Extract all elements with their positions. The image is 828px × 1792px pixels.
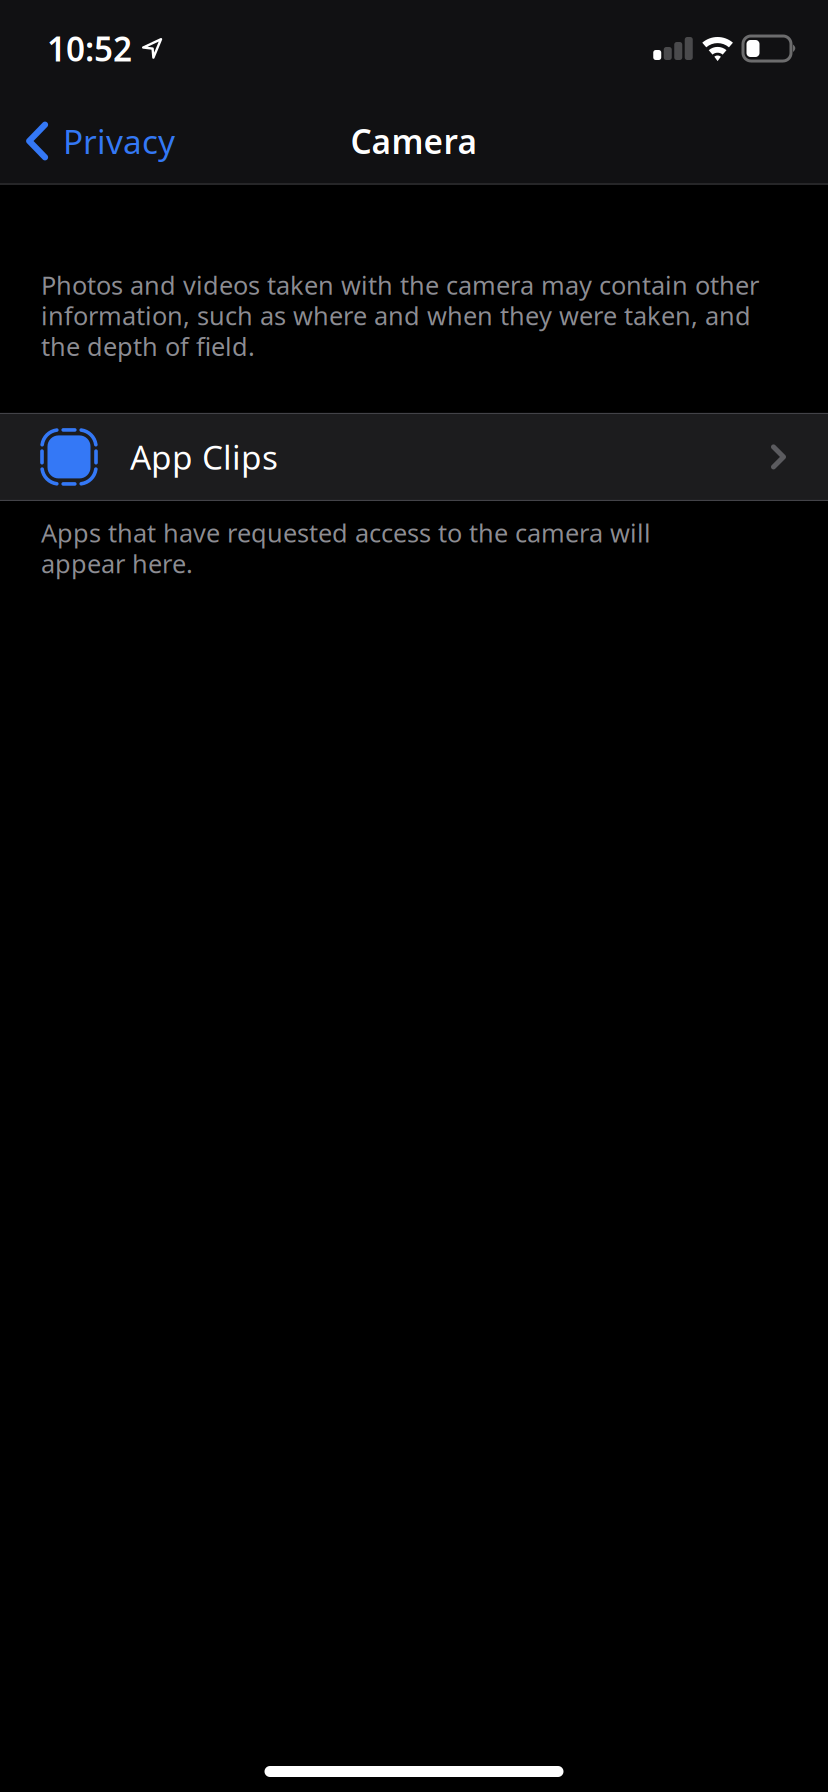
button[interactable]: App Clips — [0, 413, 828, 501]
staticText: Apps that have requested access to the c… — [41, 516, 651, 580]
staticText: Camera — [350, 119, 477, 163]
staticText: Photos and videos taken with the camera … — [41, 268, 759, 363]
staticText: Privacy — [63, 119, 175, 163]
staticText: 10:52 — [47, 26, 132, 71]
button[interactable]: Privacy — [0, 97, 191, 184]
staticText: App Clips — [130, 435, 278, 479]
